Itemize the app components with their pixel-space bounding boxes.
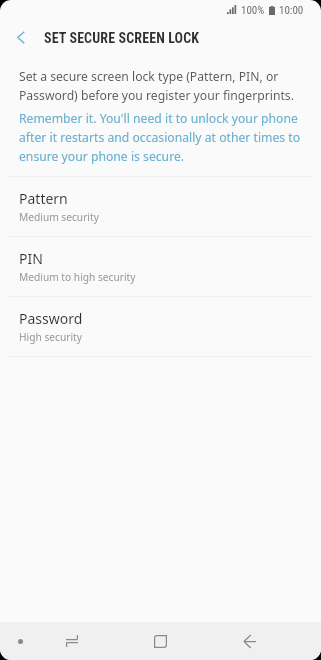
button[interactable]: Home [116,622,205,660]
staticText: Set a secure screen lock type (Pattern, … [19,66,301,104]
button[interactable]: Pattern [0,177,321,236]
button[interactable]: Back [205,622,294,660]
staticText: PIN [19,249,43,268]
button[interactable]: PIN [0,237,321,296]
button[interactable]: Password [0,297,321,356]
staticText: 10:00 [279,4,304,17]
staticText: Password [19,309,83,328]
staticText: 100% [241,4,265,17]
button[interactable]: Assistant [0,622,27,660]
button[interactable]: Recent apps [27,622,116,660]
staticText: High security [19,330,82,344]
staticText: Medium to high security [19,270,136,284]
staticText: Medium security [19,210,99,224]
button[interactable]: Navigate up [0,22,44,53]
staticText: SET SECURE SCREEN LOCK [44,30,200,46]
staticText: Pattern [19,189,68,208]
staticText: Remember it. You'll need it to unlock yo… [19,108,301,165]
